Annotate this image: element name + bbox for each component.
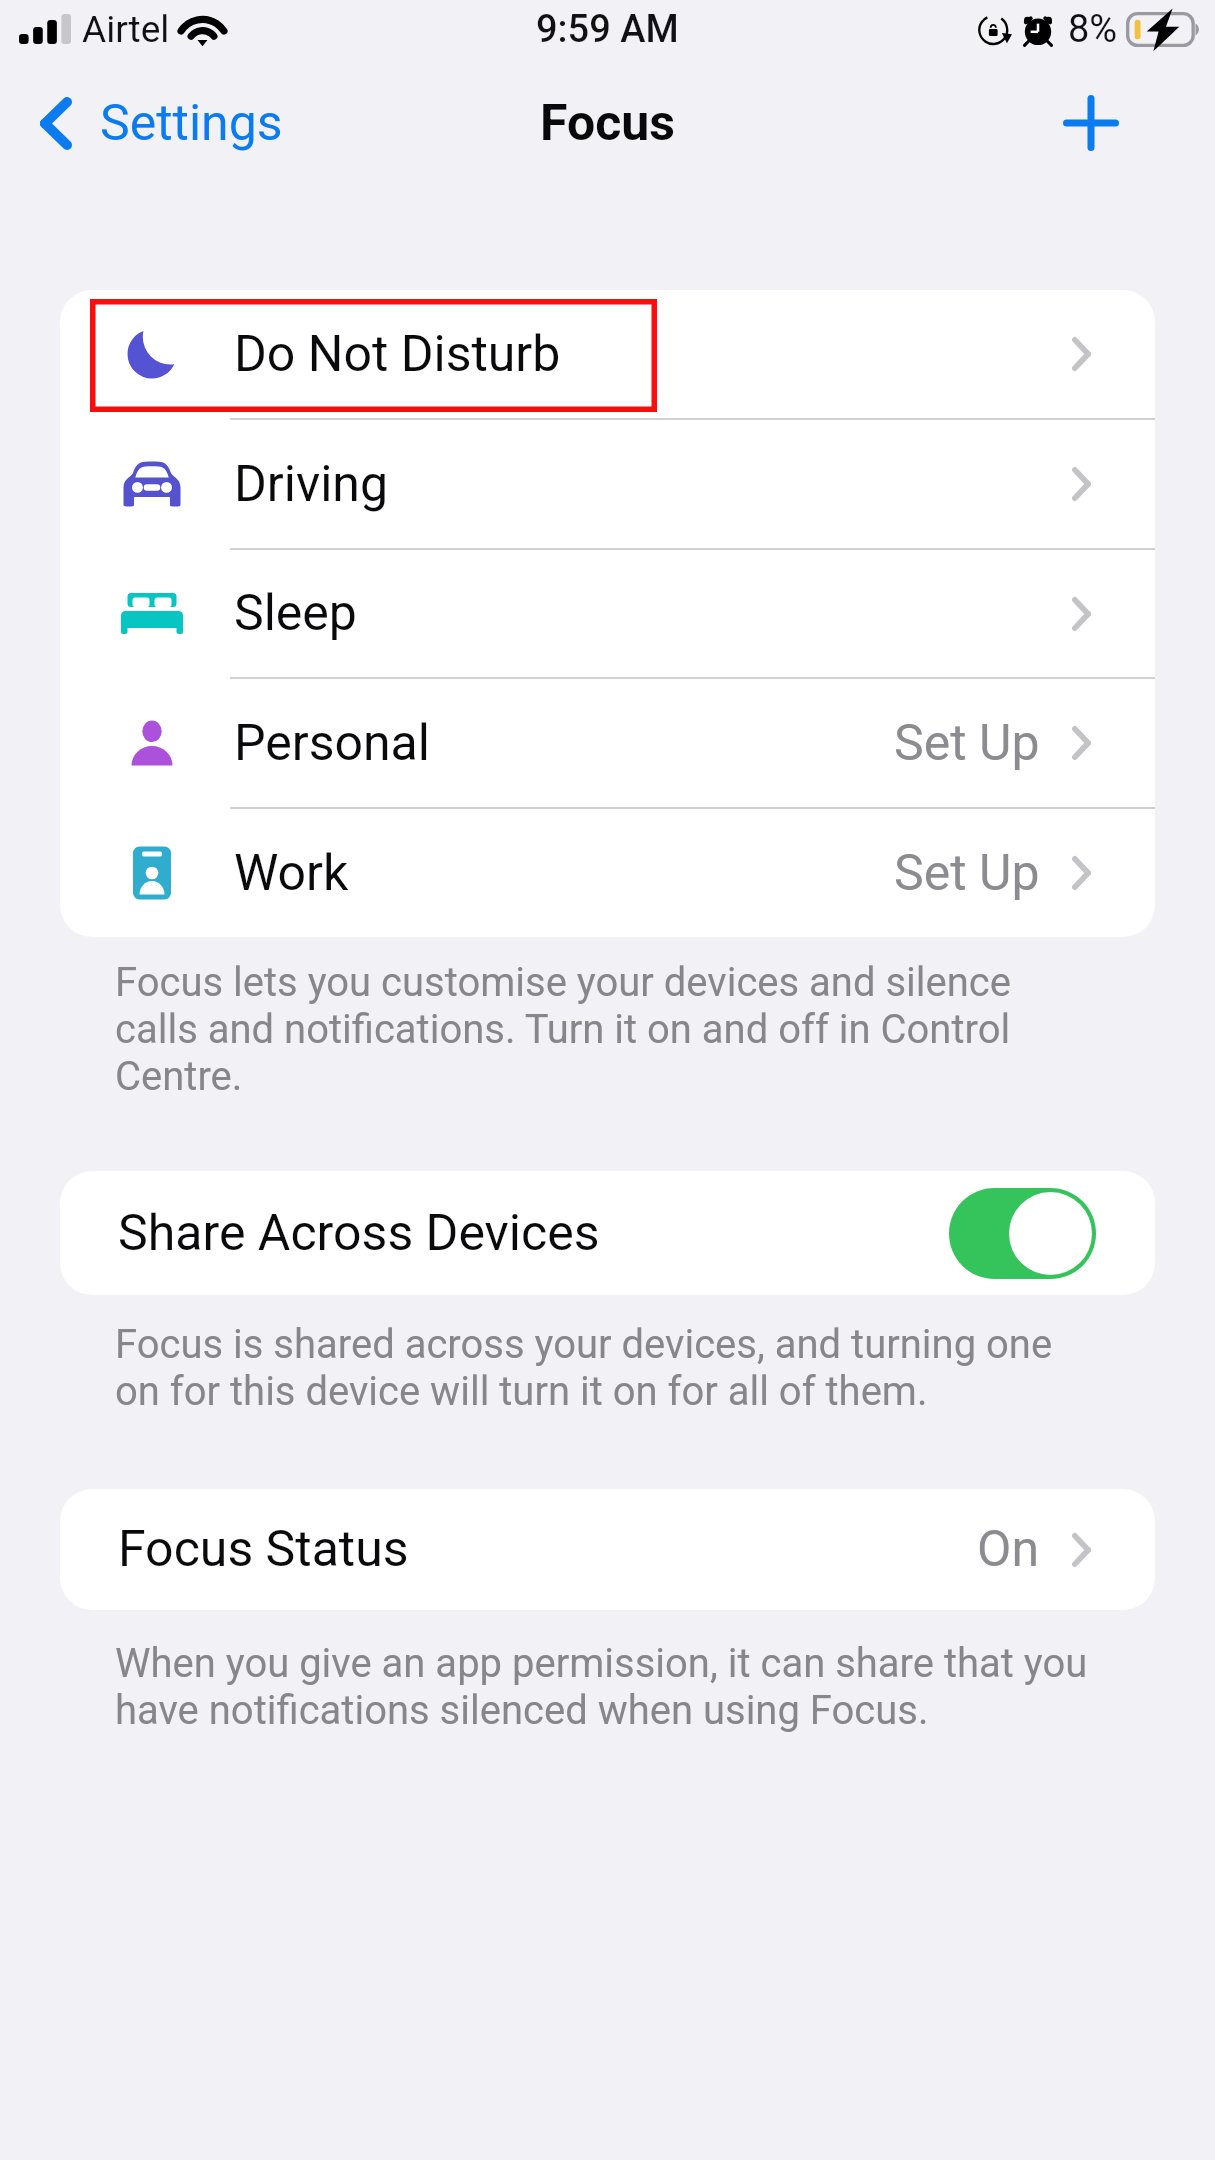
staticText: Airtel: [82, 8, 170, 51]
staticText: Focus lets you customise your devices an…: [115, 959, 1011, 1006]
button[interactable]: Do Not Disturb: [60, 290, 1155, 418]
staticText: Centre.: [115, 1053, 243, 1100]
button[interactable]: Add Focus: [1035, 67, 1147, 179]
button[interactable]: Share Across Devices toggle, on: [949, 1188, 1096, 1279]
button[interactable]: Share Across Devices: [60, 1171, 1155, 1295]
staticText: On: [977, 1520, 1040, 1579]
button[interactable]: Settings: [0, 80, 307, 167]
button[interactable]: Work: [60, 809, 1155, 937]
staticText: Personal: [234, 714, 430, 773]
staticText: 8%: [1068, 7, 1118, 52]
staticText: Driving: [234, 455, 388, 514]
staticText: Set Up: [894, 844, 1040, 903]
staticText: Sleep: [234, 584, 357, 643]
staticText: Focus: [540, 94, 675, 153]
staticText: Focus is shared across your devices, and…: [115, 1321, 1053, 1368]
staticText: on for this device will turn it on for a…: [115, 1368, 928, 1415]
staticText: Share Across Devices: [118, 1204, 600, 1263]
button[interactable]: Driving: [60, 420, 1155, 548]
staticText: Do Not Disturb: [234, 325, 561, 384]
button[interactable]: Sleep: [60, 550, 1155, 677]
button[interactable]: Personal: [60, 679, 1155, 807]
staticText: Set Up: [894, 714, 1040, 773]
staticText: Settings: [100, 94, 283, 153]
staticText: calls and notifications. Turn it on and …: [115, 1006, 1011, 1053]
staticText: Work: [234, 844, 349, 903]
staticText: 9:59 AM: [536, 7, 679, 52]
staticText: Focus Status: [118, 1520, 409, 1579]
staticText: When you give an app permission, it can …: [115, 1640, 1088, 1687]
button[interactable]: Focus Status: [60, 1489, 1155, 1610]
staticText: have notifications silenced when using F…: [115, 1687, 929, 1734]
